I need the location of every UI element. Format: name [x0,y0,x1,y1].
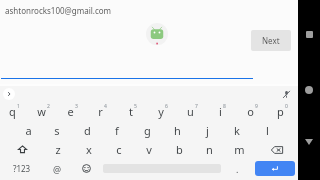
button[interactable]: g [133,121,161,140]
staticText: o [247,104,254,119]
staticText: b [176,142,183,157]
staticText: z [55,142,61,157]
staticText: r [98,104,103,119]
button[interactable]: f [103,121,131,140]
button[interactable]: a [14,121,42,140]
staticText: f [115,123,119,138]
button[interactable]: e [58,102,86,121]
button[interactable]: c [105,140,133,159]
staticText: g [144,123,151,138]
staticText: @ [53,163,62,175]
staticText: j [206,123,209,138]
button[interactable]: Backspace [255,140,298,159]
button[interactable]: m [225,140,253,159]
button[interactable]: v [135,140,163,159]
button[interactable]: Next [251,30,291,51]
staticText: ashtonrocks100@gmail.com [5,5,112,16]
staticText: e [67,104,74,119]
staticText: u [187,104,194,119]
staticText: p [277,104,284,119]
button[interactable]: ?123 [0,159,43,178]
staticText: 0 [285,103,288,110]
button[interactable]: l [253,121,281,140]
staticText: m [234,142,245,157]
staticText: i [219,104,222,119]
staticText: q [9,104,16,119]
staticText: l [266,123,269,138]
button[interactable]: y [148,102,176,121]
staticText: 3 [75,103,78,110]
button[interactable]: Expand toolbar [3,88,15,100]
staticText: d [84,123,91,138]
button[interactable]: h [163,121,191,140]
staticText: . [236,163,239,175]
button[interactable]: t [118,102,146,121]
staticText: ?123 [13,163,31,174]
button[interactable]: r [88,102,116,121]
button[interactable]: w [29,102,57,121]
button[interactable]: d [73,121,101,140]
staticText: 2 [47,103,50,110]
button[interactable]: q [0,102,28,121]
button[interactable]: s [43,121,71,140]
staticText: v [146,142,152,157]
staticText: y [158,104,164,119]
staticText: 8 [223,103,226,110]
button[interactable]: . [223,159,252,178]
staticText: k [234,123,240,138]
button[interactable]: Back [301,134,317,150]
button[interactable]: u [178,102,206,121]
button[interactable]: Home [301,82,317,98]
button[interactable]: Emoji [72,159,101,178]
button[interactable]: b [165,140,193,159]
button[interactable]: x [75,140,103,159]
button[interactable]: z [44,140,72,159]
button[interactable]: j [193,121,221,140]
staticText: a [25,123,32,138]
staticText: s [54,123,60,138]
staticText: c [116,142,122,157]
button[interactable]: Shift [0,140,44,159]
button[interactable]: n [195,140,223,159]
staticText: n [206,142,213,157]
staticText: 7 [195,103,198,110]
button[interactable]: @ [43,159,72,178]
staticText: 9 [255,103,258,110]
staticText: w [37,104,46,119]
staticText: x [86,142,92,157]
button[interactable]: i [208,102,236,121]
staticText: 5 [134,103,137,110]
button[interactable]: Recent apps [301,26,317,42]
button[interactable]: Enter [255,161,295,176]
staticText: 1 [17,103,20,110]
button[interactable]: k [223,121,251,140]
button[interactable]: p [268,102,296,121]
staticText: h [174,123,181,138]
staticText: 4 [104,103,107,110]
staticText: t [129,104,133,119]
staticText: Next [262,35,280,46]
button[interactable]: o [238,102,266,121]
staticText: 6 [165,103,168,110]
button[interactable]: Voice input off [280,88,292,100]
